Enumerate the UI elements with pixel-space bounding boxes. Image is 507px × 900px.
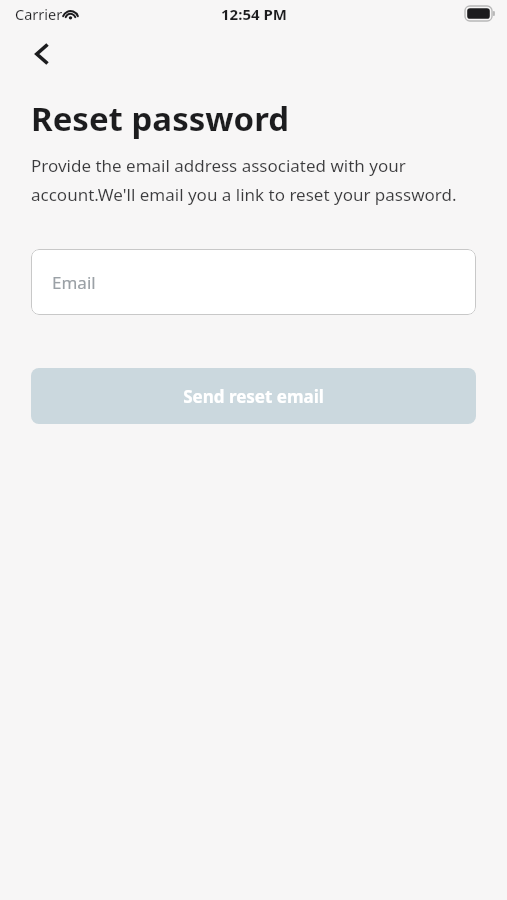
staticText: Provide the email address associated wit…	[31, 154, 476, 206]
button[interactable]: Email	[31, 249, 476, 315]
button[interactable]: Back	[18, 30, 66, 78]
staticText: Reset password	[31, 96, 290, 141]
button[interactable]: Send reset email	[31, 368, 476, 424]
staticText: Carrier	[15, 4, 63, 24]
staticText: Email	[52, 271, 96, 294]
staticText: 12:54 PM	[221, 4, 287, 24]
other: Wi-Fi	[62, 6, 79, 20]
other: Battery full	[465, 6, 495, 21]
staticText: Send reset email	[183, 385, 324, 408]
